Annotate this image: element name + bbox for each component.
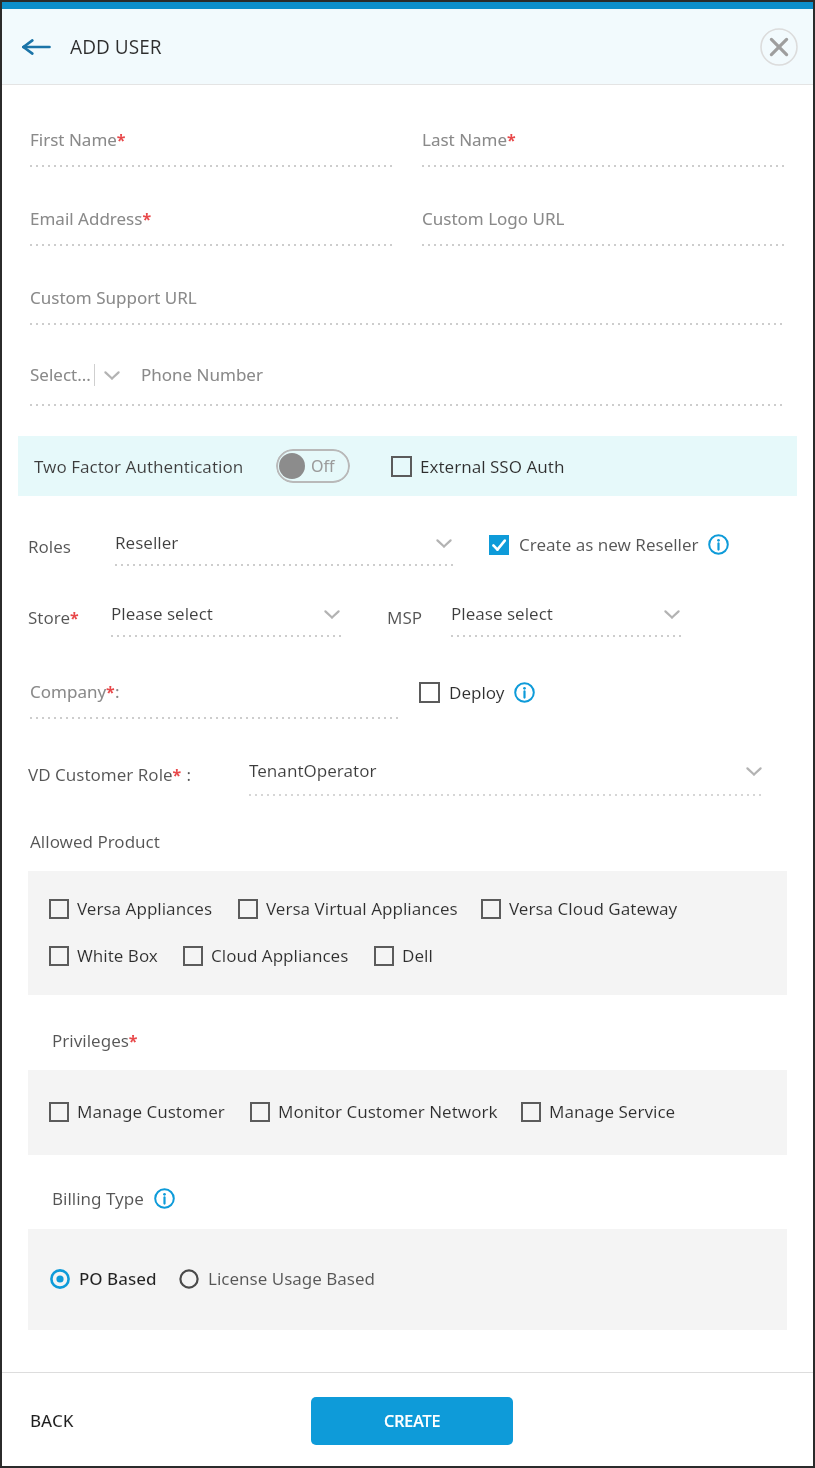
staticText: Please select xyxy=(111,602,213,625)
button[interactable]: Reseller xyxy=(115,531,455,566)
button[interactable]: TenantOperator xyxy=(249,759,765,796)
staticText: Billing Type xyxy=(52,1187,144,1210)
staticText: : xyxy=(182,763,191,786)
button[interactable]: Versa Virtual Appliances xyxy=(239,897,458,920)
button[interactable]: Back xyxy=(14,25,58,69)
staticText: CREATE xyxy=(384,1410,441,1432)
button[interactable]: Manage Customer xyxy=(50,1100,225,1123)
staticText: Manage Customer xyxy=(77,1100,225,1123)
staticText: Last Name* xyxy=(422,128,516,151)
staticText: Off xyxy=(311,455,335,477)
button[interactable]: Versa Cloud Gateway xyxy=(482,897,678,920)
staticText: Reseller xyxy=(115,531,179,554)
button[interactable]: BACK xyxy=(26,1405,78,1436)
staticText: Please select xyxy=(451,602,553,625)
button[interactable]: Dell xyxy=(375,944,433,967)
button[interactable]: Cloud Appliances xyxy=(184,944,349,967)
button[interactable]: Manage Service xyxy=(522,1100,676,1123)
staticText: License Usage Based xyxy=(208,1267,376,1290)
staticText: Phone Number xyxy=(141,363,263,386)
button[interactable]: Select... xyxy=(30,363,123,386)
staticText: Two Factor Authentication xyxy=(34,455,244,478)
staticText: Custom Support URL xyxy=(30,286,197,309)
button[interactable]: Please select xyxy=(451,602,683,637)
staticText: Cloud Appliances xyxy=(211,944,349,967)
staticText: Versa Appliances xyxy=(77,897,213,920)
staticText: Select... xyxy=(30,363,91,386)
staticText: Email Address* xyxy=(30,207,152,230)
staticText: TenantOperator xyxy=(249,759,377,782)
staticText: Manage Service xyxy=(549,1100,676,1123)
button[interactable]: License Usage Based xyxy=(179,1267,376,1290)
staticText: Custom Logo URL xyxy=(422,207,565,230)
button[interactable]: CREATE xyxy=(311,1397,513,1445)
staticText: Store* xyxy=(28,606,79,629)
staticText: MSP xyxy=(387,606,423,629)
staticText: Roles xyxy=(28,535,71,558)
button[interactable]: External SSO Auth xyxy=(392,455,565,478)
staticText: VD Customer Role* xyxy=(28,763,182,786)
staticText: : xyxy=(115,680,120,703)
button[interactable]: Close xyxy=(757,25,801,69)
staticText: Company* xyxy=(30,680,115,703)
button[interactable]: Deploy xyxy=(420,681,535,704)
staticText: External SSO Auth xyxy=(420,455,565,478)
staticText: Dell xyxy=(402,944,433,967)
staticText: BACK xyxy=(30,1409,74,1432)
staticText: ADD USER xyxy=(70,34,162,60)
button[interactable]: Please select xyxy=(111,602,343,637)
staticText: Create as new Reseller xyxy=(519,533,699,556)
staticText: Versa Cloud Gateway xyxy=(509,897,678,920)
staticText: Deploy xyxy=(449,681,505,704)
staticText: First Name* xyxy=(30,128,126,151)
button[interactable]: Create as new Reseller xyxy=(489,533,729,556)
staticText: Privileges* xyxy=(52,1029,138,1052)
staticText: Versa Virtual Appliances xyxy=(266,897,458,920)
button[interactable]: White Box xyxy=(50,944,158,967)
button[interactable]: Monitor Customer Network xyxy=(251,1100,498,1123)
staticText: PO Based xyxy=(79,1267,157,1290)
staticText: Monitor Customer Network xyxy=(278,1100,498,1123)
staticText: Allowed Product xyxy=(30,830,160,853)
button[interactable]: Two Factor Authentication toggle xyxy=(276,449,350,483)
staticText: White Box xyxy=(77,944,158,967)
button[interactable]: Versa Appliances xyxy=(50,897,213,920)
button[interactable]: PO Based xyxy=(50,1267,157,1290)
